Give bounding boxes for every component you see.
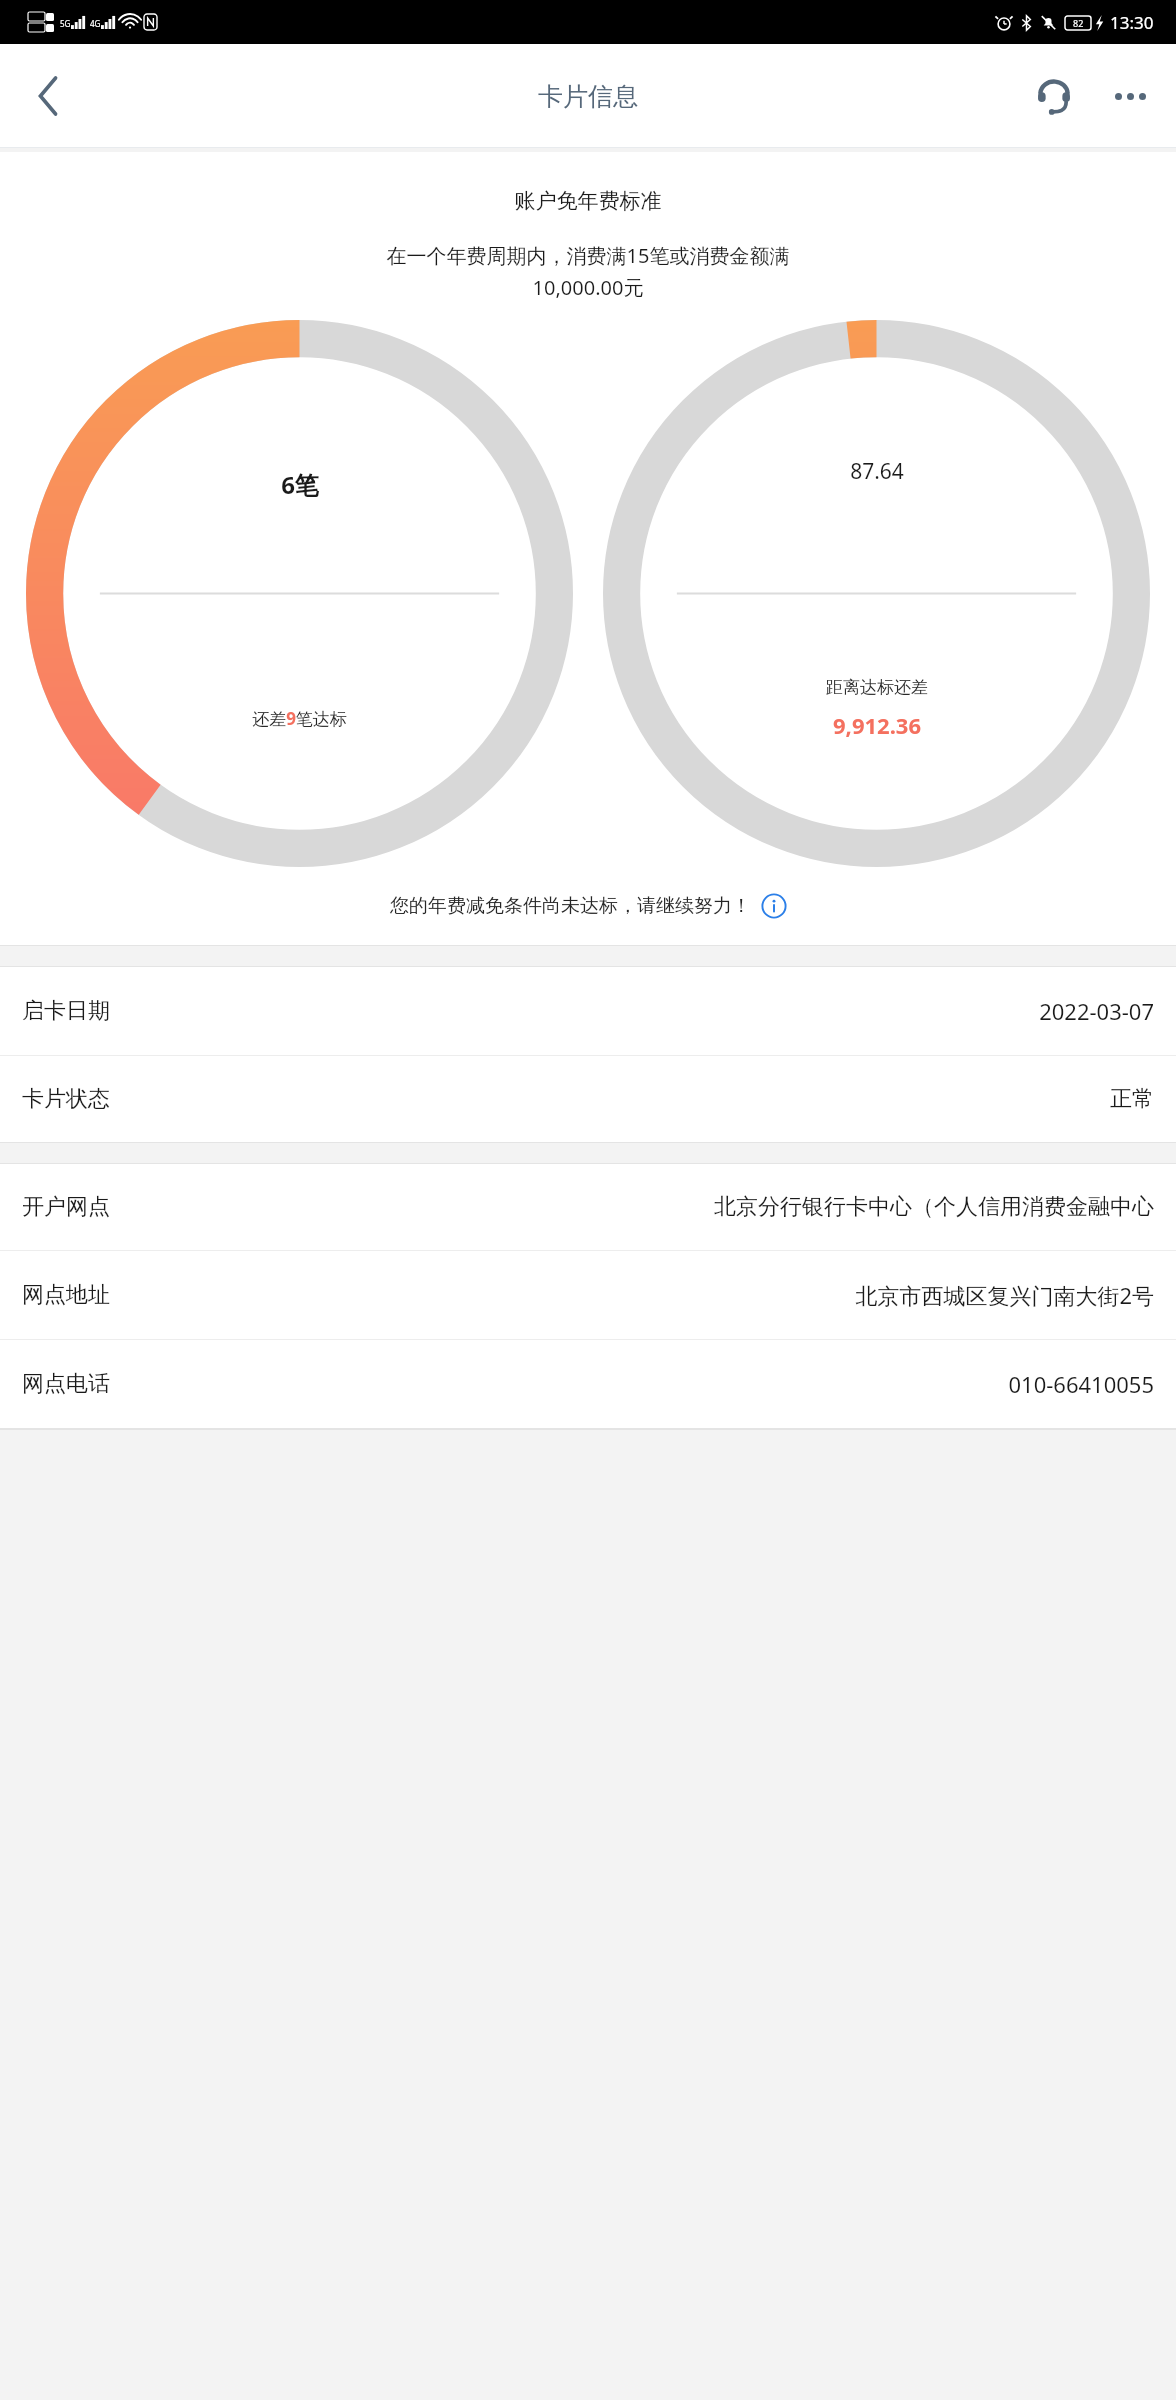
staticText: 87.64 — [850, 457, 904, 486]
staticText: 开户网点 — [22, 1193, 110, 1221]
button[interactable]: 开户网点 — [0, 1164, 1176, 1250]
staticText: 正常 — [1110, 1085, 1154, 1113]
staticText: 卡片信息 — [538, 81, 638, 112]
button[interactable]: 返回 — [0, 48, 96, 144]
staticText: 5G — [60, 18, 71, 29]
staticText: 还差9笔达标 — [252, 707, 347, 730]
button[interactable]: 更多 — [1092, 58, 1168, 134]
staticText: 010-66410055 — [1008, 1369, 1154, 1399]
staticText: 6笔 — [281, 468, 319, 501]
staticText: 82 — [1073, 17, 1084, 29]
button[interactable]: 网点地址 — [0, 1251, 1176, 1339]
staticText: 网点地址 — [22, 1281, 110, 1309]
staticText: 启卡日期 — [22, 997, 110, 1025]
staticText: 13:30 — [1110, 11, 1154, 34]
button[interactable]: 客服 — [1016, 58, 1092, 134]
staticText: 北京市西城区复兴门南大街2号 — [855, 1280, 1154, 1310]
button[interactable]: 网点电话 — [0, 1340, 1176, 1428]
staticText: 账户免年费标准 — [0, 188, 1176, 214]
staticText: 卡片状态 — [22, 1085, 110, 1113]
staticText: 网点电话 — [22, 1370, 110, 1398]
button[interactable]: 详情说明 — [761, 893, 787, 919]
staticText: 9,912.36 — [833, 710, 921, 740]
button[interactable]: 启卡日期 — [0, 967, 1176, 1055]
button[interactable]: 卡片状态 — [0, 1056, 1176, 1142]
staticText: 2022-03-07 — [1039, 996, 1154, 1026]
staticText: 北京分行银行卡中心（个人信用消费金融中心 — [714, 1193, 1154, 1221]
staticText: 您的年费减免条件尚未达标，请继续努力！ — [390, 894, 751, 918]
staticText: 在一个年费周期内，消费满15笔或消费金额满 10,000.00元 — [28, 242, 1148, 300]
staticText: 距离达标还差 — [826, 677, 928, 698]
staticText: 4G — [90, 18, 101, 29]
